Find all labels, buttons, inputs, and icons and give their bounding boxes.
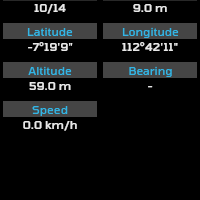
button[interactable]: Longitude	[103, 23, 197, 53]
button[interactable]: Satellites	[3, 0, 97, 14]
staticText: Speed	[32, 102, 68, 116]
staticText: 59.0 m	[3, 78, 97, 92]
staticText: Longitude	[122, 24, 179, 38]
staticText: Bearing	[128, 63, 173, 77]
staticText: -	[103, 78, 197, 92]
staticText: 9.0 m	[103, 0, 197, 14]
button[interactable]: Latitude	[3, 23, 97, 53]
staticText: 0.0 km/h	[3, 117, 97, 131]
staticText: 10/14	[3, 0, 97, 14]
staticText: 112°42'11"	[103, 39, 197, 53]
staticText: Altitude	[28, 63, 72, 77]
staticText: -7°19'9"	[3, 39, 97, 53]
button[interactable]: Bearing	[103, 62, 197, 92]
button[interactable]: Speed	[3, 101, 97, 131]
button[interactable]: Altitude	[3, 62, 97, 92]
staticText: Latitude	[27, 24, 73, 38]
button[interactable]: Accuracy	[103, 0, 197, 14]
